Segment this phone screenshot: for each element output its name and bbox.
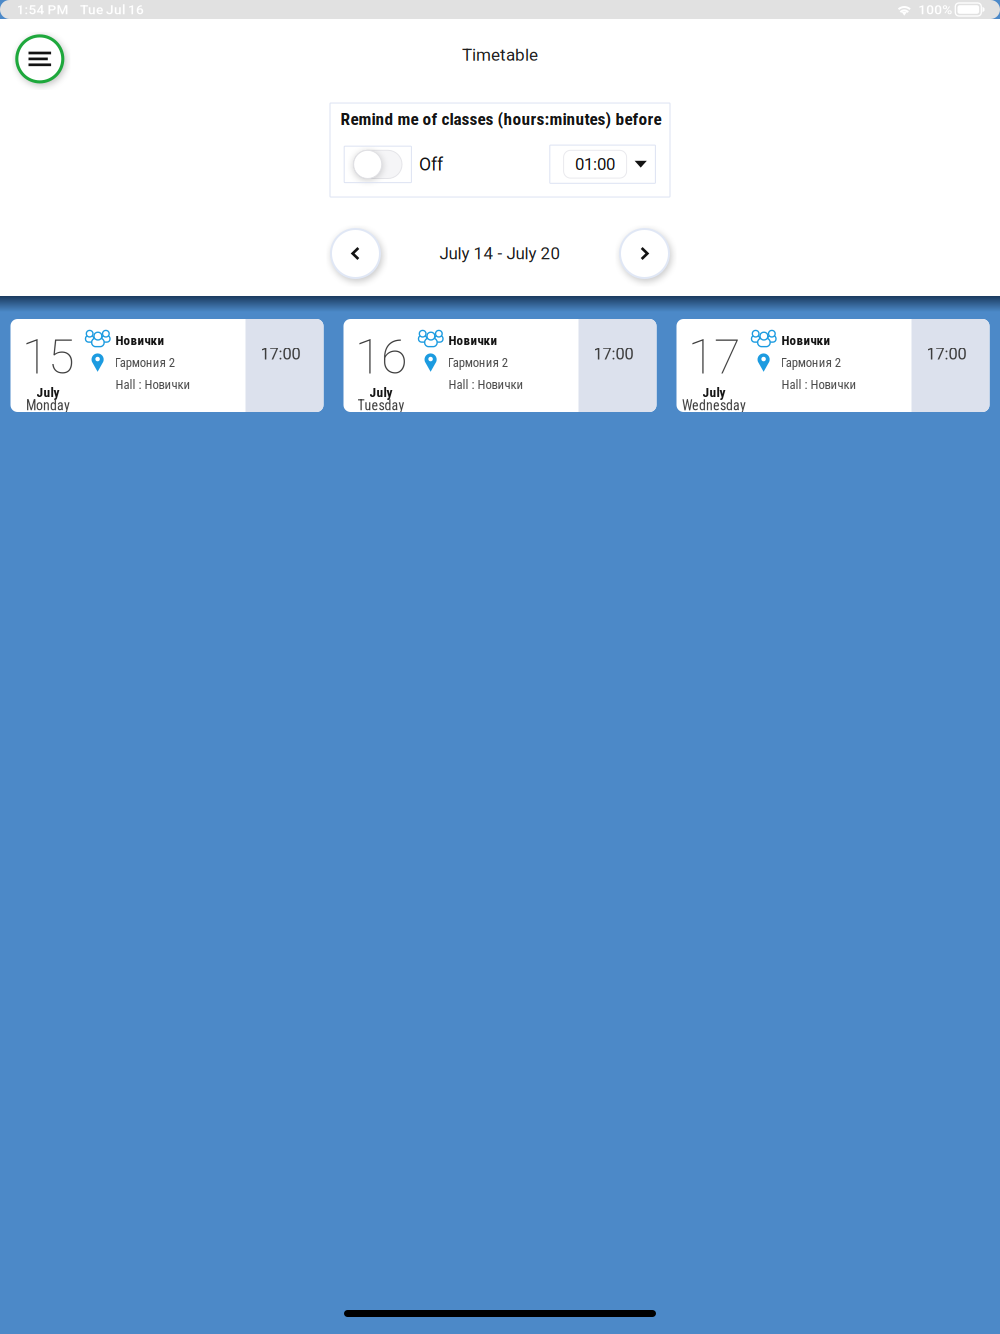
button[interactable]: 17:00 — [343, 319, 656, 412]
staticText: July — [36, 385, 59, 400]
staticText: Hall : Новички — [781, 377, 856, 392]
staticText: 1:54 PM — [16, 1, 68, 17]
staticText: Гармония 2 — [781, 355, 841, 370]
staticText: Remind me of classes (hours:minutes) bef… — [340, 109, 661, 129]
staticText: Off — [419, 154, 443, 175]
staticText: Новички — [115, 333, 164, 348]
button[interactable]: Menu — [17, 36, 63, 82]
button[interactable]: Previous week — [331, 229, 380, 278]
staticText: 17:00 — [926, 344, 966, 364]
staticText: July — [369, 385, 392, 400]
staticText: Tue Jul 16 — [80, 1, 144, 17]
button[interactable]: Reminder toggle — [344, 146, 411, 183]
staticText: 17:00 — [260, 344, 300, 364]
staticText: Wednesday — [682, 397, 746, 414]
staticText: Новички — [448, 333, 497, 348]
button[interactable]: Reminder interval — [550, 145, 655, 183]
button[interactable]: 17:00 — [10, 319, 323, 412]
staticText: Timetable — [462, 45, 538, 65]
staticText: Новички — [781, 333, 830, 348]
staticText: Гармония 2 — [448, 355, 508, 370]
button[interactable]: Next week — [620, 229, 669, 278]
staticText: July 14 - July 20 — [439, 244, 560, 263]
staticText: Hall : Новички — [448, 377, 523, 392]
staticText: 01:00 — [575, 154, 615, 174]
staticText: Tuesday — [357, 397, 404, 414]
staticText: 15 — [22, 329, 74, 385]
staticText: 17 — [688, 329, 740, 385]
staticText: 17:00 — [593, 344, 633, 364]
button[interactable]: 17:00 — [676, 319, 989, 412]
staticText: July — [702, 385, 725, 400]
staticText: 100% — [918, 1, 952, 17]
staticText: Monday — [26, 397, 70, 414]
staticText: 16 — [355, 329, 407, 385]
staticText: Hall : Новички — [115, 377, 190, 392]
staticText: Гармония 2 — [115, 355, 175, 370]
